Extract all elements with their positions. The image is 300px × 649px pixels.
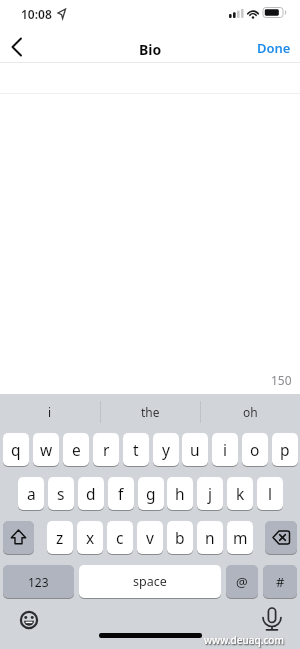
- button[interactable]: #: [263, 565, 297, 598]
- button[interactable]: v: [137, 521, 163, 554]
- staticText: Bio: [139, 40, 162, 56]
- button[interactable]: [4, 36, 30, 58]
- staticText: q: [11, 439, 21, 460]
- staticText: i: [223, 439, 227, 460]
- staticText: i: [48, 404, 52, 420]
- staticText: #: [276, 573, 285, 591]
- button[interactable]: i: [212, 433, 238, 466]
- button[interactable]: a: [18, 477, 44, 510]
- button[interactable]: w: [33, 433, 59, 466]
- staticText: t: [133, 439, 139, 460]
- staticText: x: [86, 527, 95, 548]
- button[interactable]: r: [93, 433, 119, 466]
- staticText: www.deuaq.com: [204, 633, 284, 647]
- button[interactable]: i: [0, 398, 100, 426]
- button[interactable]: k: [227, 477, 253, 510]
- button[interactable]: d: [78, 477, 104, 510]
- button[interactable]: oh: [200, 398, 300, 426]
- button[interactable]: 123: [3, 565, 74, 598]
- button[interactable]: [15, 606, 43, 634]
- button[interactable]: l: [257, 477, 283, 510]
- button[interactable]: u: [182, 433, 208, 466]
- staticText: 10:08: [21, 6, 52, 22]
- staticText: oh: [243, 404, 258, 420]
- button[interactable]: y: [153, 433, 179, 466]
- button[interactable]: f: [108, 477, 134, 510]
- staticText: @: [236, 573, 248, 591]
- staticText: u: [190, 439, 200, 460]
- staticText: p: [280, 439, 290, 460]
- staticText: y: [162, 439, 170, 460]
- button[interactable]: e: [63, 433, 89, 466]
- button[interactable]: s: [48, 477, 74, 510]
- staticText: s: [57, 483, 65, 504]
- button[interactable]: z: [47, 521, 73, 554]
- staticText: n: [205, 527, 215, 548]
- button[interactable]: space: [79, 565, 221, 598]
- staticText: v: [146, 527, 154, 548]
- staticText: d: [86, 483, 96, 504]
- button[interactable]: [258, 603, 288, 635]
- staticText: r: [103, 439, 110, 460]
- staticText: f: [118, 483, 124, 504]
- button[interactable]: m: [227, 521, 253, 554]
- staticText: z: [56, 527, 64, 548]
- staticText: b: [175, 527, 185, 548]
- button[interactable]: h: [167, 477, 193, 510]
- staticText: e: [72, 439, 81, 460]
- staticText: m: [233, 527, 248, 548]
- button[interactable]: the: [100, 398, 200, 426]
- button[interactable]: o: [242, 433, 268, 466]
- staticText: k: [236, 483, 245, 504]
- button[interactable]: p: [272, 433, 298, 466]
- button[interactable]: @: [226, 565, 258, 598]
- button[interactable]: t: [123, 433, 149, 466]
- button[interactable]: [3, 521, 34, 554]
- staticText: space: [133, 573, 167, 590]
- staticText: the: [141, 404, 160, 420]
- button[interactable]: x: [77, 521, 103, 554]
- staticText: c: [116, 527, 124, 548]
- button[interactable]: q: [3, 433, 29, 466]
- button[interactable]: n: [197, 521, 223, 554]
- staticText: 123: [28, 574, 49, 590]
- button[interactable]: Done: [252, 36, 296, 60]
- staticText: w: [40, 439, 53, 460]
- staticText: h: [175, 483, 185, 504]
- staticText: j: [208, 483, 212, 504]
- button[interactable]: g: [138, 477, 164, 510]
- button[interactable]: b: [167, 521, 193, 554]
- button[interactable]: c: [107, 521, 133, 554]
- staticText: 150: [271, 372, 292, 388]
- button[interactable]: j: [197, 477, 223, 510]
- staticText: Done: [257, 39, 291, 57]
- button[interactable]: [265, 521, 297, 554]
- staticText: a: [27, 483, 36, 504]
- staticText: g: [146, 483, 156, 504]
- staticText: o: [250, 439, 260, 460]
- staticText: l: [268, 483, 272, 504]
